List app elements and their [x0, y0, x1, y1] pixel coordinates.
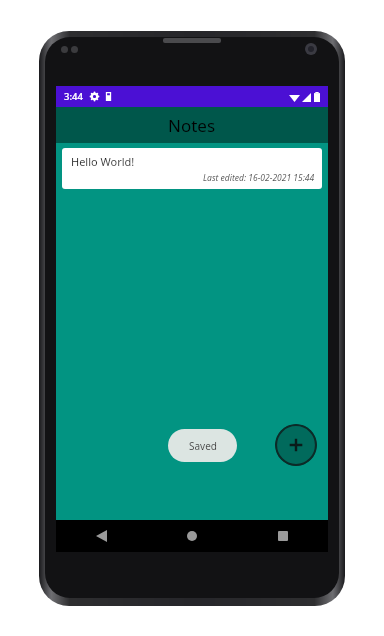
button[interactable]: Saved	[168, 429, 237, 462]
staticText: 3:44	[64, 90, 83, 103]
button[interactable]: Back	[56, 520, 146, 552]
button[interactable]: Home	[146, 520, 237, 552]
staticText: Last edited: 16-02-2021 15:44	[203, 172, 315, 184]
staticText: Saved	[189, 439, 217, 453]
button[interactable]: Add note	[275, 424, 317, 466]
button[interactable]: Recent apps	[237, 520, 328, 552]
staticText: Hello World!	[71, 154, 135, 169]
staticText: Notes	[168, 114, 216, 137]
button[interactable]: Hello World!	[62, 148, 322, 189]
